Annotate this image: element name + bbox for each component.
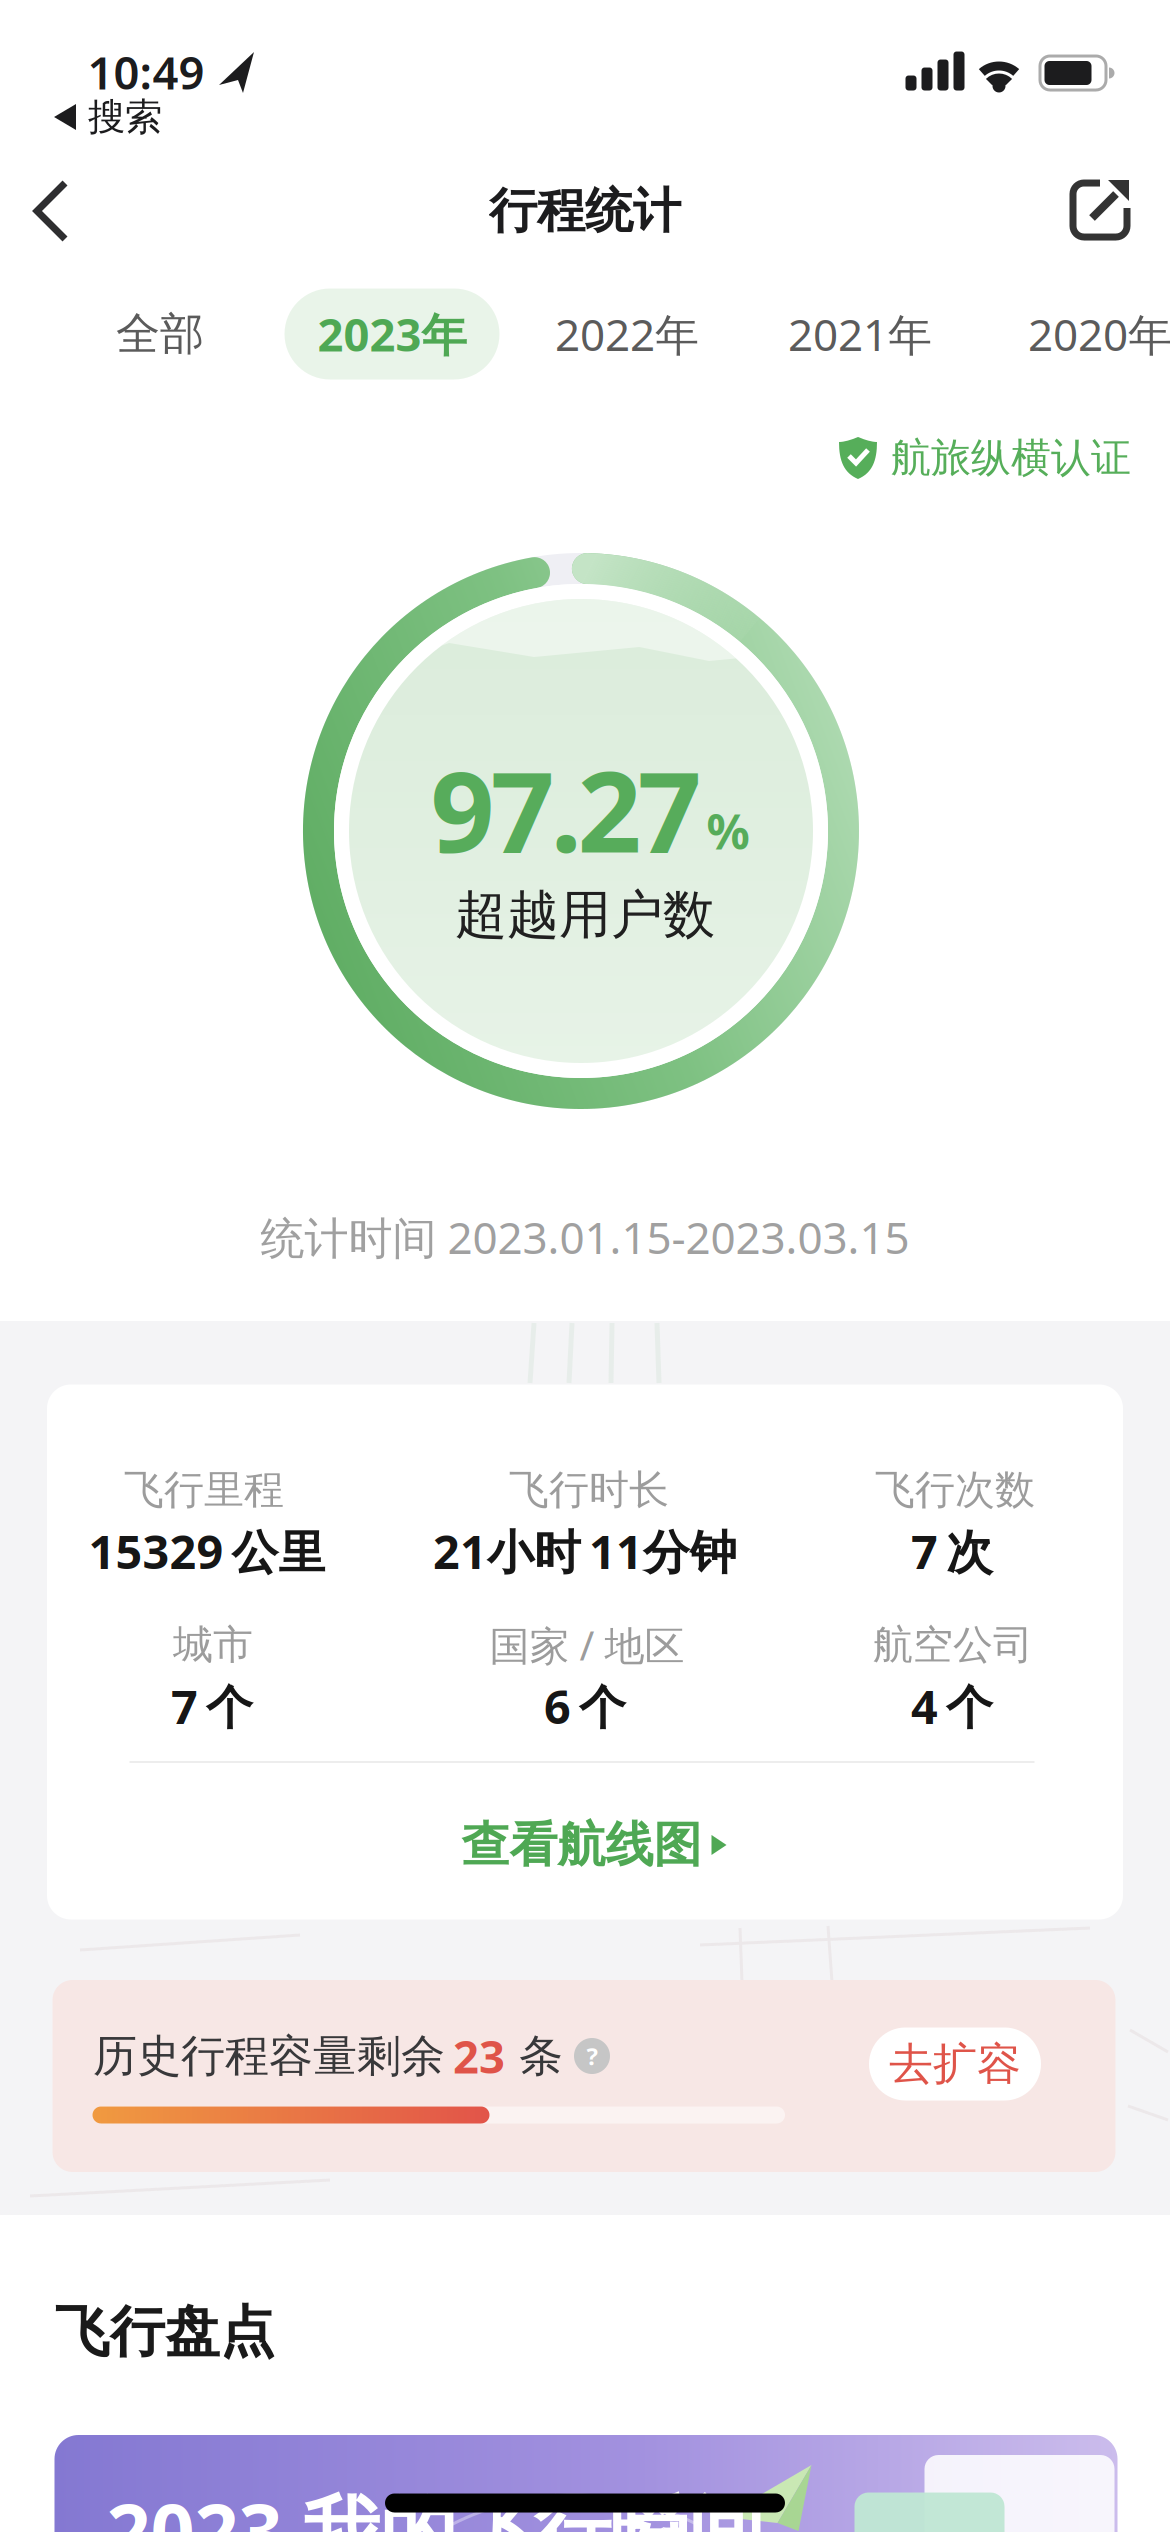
staticText: 统计时间 2023.01.15-2023.03.15 (260, 1208, 909, 1266)
staticText: 航旅纵横认证 (891, 433, 1131, 482)
staticText: 飞行盘点 (55, 2298, 275, 2365)
staticText: 2021年 (788, 305, 932, 363)
staticText: % (706, 799, 749, 863)
staticText: 2022年 (555, 305, 699, 363)
button[interactable]: 返回 (32, 179, 72, 243)
staticText: 超越用户数 (455, 883, 715, 947)
staticText: 6 个 (544, 1675, 626, 1737)
staticText: 7 个 (171, 1675, 253, 1737)
staticText: 飞行里程 (124, 1465, 284, 1514)
staticText: 去扩容 (889, 2037, 1021, 2091)
staticText: 搜索 (88, 94, 162, 140)
button[interactable]: 分享 (1068, 178, 1132, 242)
staticText: 行程统计 (489, 181, 681, 240)
staticText: 航空公司 (873, 1620, 1033, 1669)
staticText: 2023年 (317, 304, 466, 364)
staticText: 城市 (173, 1620, 253, 1669)
button[interactable]: 航旅纵横认证 (839, 433, 1131, 482)
staticText: 2020年 (1028, 305, 1170, 363)
staticText: 10:49 (87, 42, 204, 102)
button[interactable]: 2023 我的飞行瞬间 (54, 2435, 1117, 2532)
staticText: 97.27 (430, 735, 701, 883)
button[interactable]: 帮助 (574, 2038, 610, 2074)
button[interactable]: 2023年 (284, 288, 499, 379)
staticText: 15329 公里 (88, 1520, 325, 1582)
button[interactable]: 2020年 (1028, 305, 1170, 363)
staticText: 2023 我的飞行瞬间 (106, 2479, 764, 2532)
staticText: ? (586, 2040, 597, 2072)
button[interactable]: 2021年 (788, 305, 932, 363)
staticText: 历史行程容量剩余 (93, 2029, 445, 2083)
staticText: 21小时 11分钟 (433, 1520, 737, 1582)
button[interactable]: 返回搜索 (54, 94, 162, 140)
staticText: 全部 (116, 307, 204, 361)
staticText: 查看航线图 (461, 1815, 701, 1874)
staticText: 4 个 (911, 1675, 993, 1737)
staticText: 条 (519, 2029, 563, 2083)
staticText: 飞行时长 (509, 1465, 669, 1514)
button[interactable]: 去扩容 (869, 2027, 1041, 2100)
button[interactable]: 全部 (116, 307, 204, 361)
staticText: 飞行次数 (875, 1465, 1035, 1514)
staticText: 国家 / 地区 (489, 1618, 684, 1671)
staticText: 7 次 (911, 1520, 993, 1582)
staticText: 23 (453, 2026, 505, 2086)
button[interactable]: 2022年 (555, 305, 699, 363)
button[interactable]: 查看航线图 (461, 1815, 726, 1874)
